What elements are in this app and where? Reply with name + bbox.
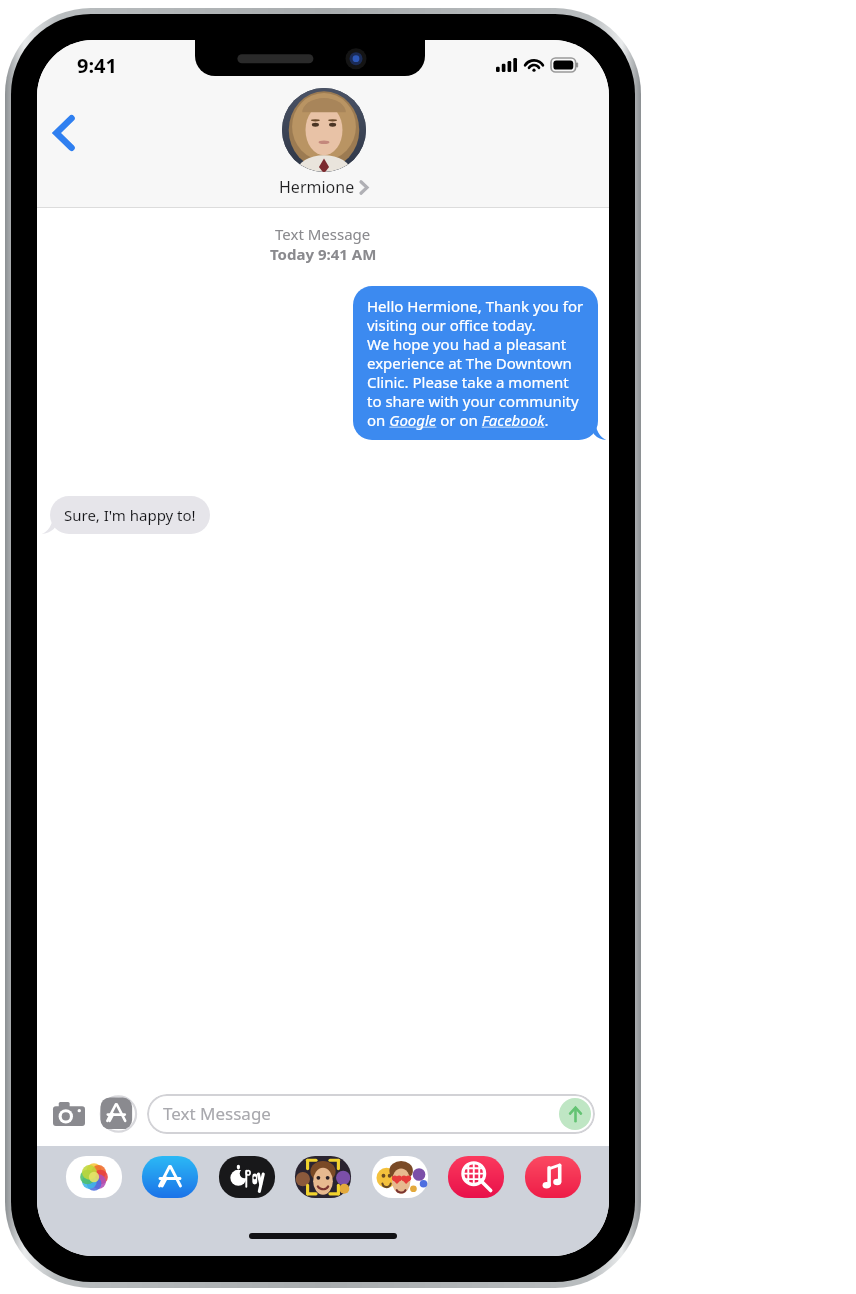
button[interactable]: Text Message bbox=[147, 1094, 595, 1134]
button[interactable]: Photos bbox=[64, 1154, 124, 1200]
staticText: Today 9:41 AM bbox=[270, 244, 377, 264]
staticText: Sure, I'm happy to! bbox=[64, 505, 196, 525]
button[interactable]: Hermione bbox=[279, 88, 368, 198]
button[interactable]: Memoji stickers bbox=[370, 1154, 430, 1200]
button[interactable]: Camera bbox=[47, 1092, 91, 1136]
button[interactable]: Back bbox=[37, 106, 91, 160]
button[interactable]: Sure, I'm happy to! bbox=[50, 496, 210, 534]
button[interactable]: Hello Hermione, Thank you for visiting o… bbox=[353, 286, 598, 440]
button[interactable]: Music bbox=[523, 1154, 583, 1200]
staticText: Hermione bbox=[279, 176, 355, 198]
button[interactable]: Apps bbox=[95, 1092, 139, 1136]
staticText: Text Message bbox=[163, 1102, 271, 1125]
staticText: Hello Hermione, Thank you for visiting o… bbox=[367, 296, 584, 430]
button[interactable]: Memoji bbox=[293, 1154, 353, 1200]
button[interactable]: Send bbox=[559, 1098, 591, 1130]
button[interactable]: App Store bbox=[140, 1154, 200, 1200]
staticText: 9:41 bbox=[77, 52, 117, 79]
button[interactable]: Images bbox=[446, 1154, 506, 1200]
button[interactable]: Apple Pay bbox=[217, 1154, 277, 1200]
staticText: Text Message bbox=[275, 224, 371, 244]
